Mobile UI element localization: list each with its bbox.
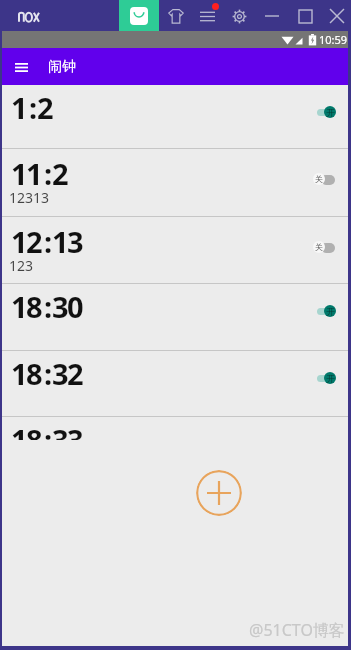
staticText: 13 — [52, 222, 82, 261]
button[interactable]: Alarm off — [318, 172, 340, 186]
staticText: 123 — [9, 256, 34, 275]
staticText: : — [44, 420, 51, 440]
staticText: @51CTO博客 — [249, 619, 345, 641]
staticText: : — [44, 354, 51, 393]
staticText: 12 — [11, 222, 41, 261]
button[interactable]: Add alarm — [196, 470, 242, 516]
staticText: : — [44, 287, 51, 326]
button[interactable]: 12 — [2, 217, 348, 283]
staticText: : — [44, 154, 51, 193]
button[interactable]: 18 — [2, 417, 348, 440]
staticText: 关 — [315, 174, 323, 184]
button[interactable]: 18 — [2, 284, 348, 350]
staticText: 12313 — [9, 188, 50, 207]
staticText: 关 — [315, 242, 323, 252]
button[interactable]: Alarm off — [318, 240, 340, 254]
button[interactable]: Menu — [7, 53, 35, 81]
button[interactable]: Themes — [164, 4, 188, 28]
staticText: 33 — [52, 420, 82, 440]
button[interactable]: Close — [323, 2, 351, 30]
staticText: 10:59 — [319, 32, 348, 47]
button[interactable]: 1 — [2, 85, 348, 148]
staticText: 32 — [52, 354, 82, 393]
button[interactable]: Settings — [227, 4, 251, 28]
staticText: : — [29, 88, 36, 127]
button[interactable]: Alarm on — [318, 371, 340, 385]
staticText: 闹钟 — [48, 58, 76, 76]
staticText: 18 — [11, 354, 41, 393]
staticText: 开 — [326, 107, 335, 118]
staticText: 18 — [11, 287, 41, 326]
button[interactable]: Alarm on — [318, 105, 340, 119]
button[interactable]: 11 — [2, 149, 348, 216]
button[interactable]: Alarm on — [318, 304, 340, 318]
staticText: 18 — [11, 420, 41, 440]
staticText: : — [44, 222, 51, 261]
staticText: 30 — [52, 287, 82, 326]
staticText: 1 — [11, 88, 26, 127]
button[interactable]: More — [195, 4, 219, 28]
staticText: 开 — [326, 306, 335, 317]
button[interactable]: Store — [119, 0, 159, 31]
staticText: 开 — [326, 373, 335, 384]
button[interactable]: Minimize — [258, 2, 286, 30]
button[interactable]: 18 — [2, 351, 348, 416]
staticText: 2 — [37, 88, 52, 127]
other: Nox — [18, 9, 40, 22]
staticText: 11 — [11, 154, 41, 193]
staticText: 2 — [52, 154, 67, 193]
button[interactable]: Maximize — [291, 2, 319, 30]
